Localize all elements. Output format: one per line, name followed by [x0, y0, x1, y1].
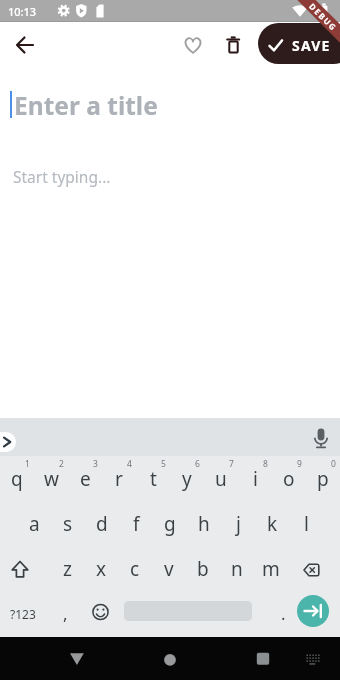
staticText: n: [231, 556, 243, 582]
button[interactable]: [0, 546, 49, 591]
staticText: Start typing...: [13, 166, 111, 187]
button[interactable]: l: [289, 501, 323, 546]
staticText: g: [164, 511, 176, 537]
button[interactable]: [0, 432, 16, 452]
button[interactable]: u: [204, 456, 238, 501]
staticText: 10:13: [8, 4, 37, 19]
button[interactable]: .: [266, 591, 300, 636]
staticText: s: [63, 511, 73, 537]
button[interactable]: r: [102, 456, 136, 501]
staticText: j: [236, 511, 241, 537]
staticText: t: [150, 466, 157, 492]
button[interactable]: f: [119, 501, 153, 546]
staticText: u: [215, 466, 227, 492]
button[interactable]: s: [51, 501, 85, 546]
button[interactable]: h: [187, 501, 221, 546]
button[interactable]: t: [136, 456, 170, 501]
button[interactable]: [8, 28, 42, 62]
staticText: r: [115, 466, 123, 492]
staticText: Enter a title: [14, 89, 158, 122]
staticText: ,: [63, 602, 68, 625]
button[interactable]: c: [118, 546, 152, 591]
staticText: 4: [127, 458, 132, 470]
button[interactable]: [84, 591, 118, 636]
button[interactable]: b: [186, 546, 220, 591]
staticText: p: [317, 466, 329, 492]
staticText: 8: [263, 458, 268, 470]
staticText: d: [96, 511, 108, 537]
button[interactable]: [298, 643, 328, 673]
button[interactable]: ?123: [0, 591, 45, 636]
staticText: 9: [297, 458, 302, 470]
staticText: .: [281, 602, 286, 625]
button[interactable]: g: [153, 501, 187, 546]
staticText: e: [80, 466, 91, 492]
staticText: b: [197, 556, 209, 582]
staticText: y: [182, 466, 192, 492]
button[interactable]: a: [17, 501, 51, 546]
button[interactable]: x: [84, 546, 118, 591]
button[interactable]: [216, 28, 250, 62]
staticText: 0: [331, 458, 336, 470]
button[interactable]: z: [50, 546, 84, 591]
staticText: o: [283, 466, 295, 492]
button[interactable]: v: [152, 546, 186, 591]
button[interactable]: p: [306, 456, 340, 501]
staticText: ?123: [10, 606, 36, 622]
staticText: v: [164, 556, 174, 582]
button[interactable]: e: [68, 456, 102, 501]
staticText: 1: [25, 458, 30, 470]
button[interactable]: n: [220, 546, 254, 591]
staticText: i: [253, 466, 258, 492]
button[interactable]: i: [238, 456, 272, 501]
staticText: SAVE: [292, 36, 331, 55]
staticText: f: [133, 511, 140, 537]
button[interactable]: m: [254, 546, 288, 591]
staticText: 5: [161, 458, 166, 470]
button[interactable]: w: [34, 456, 68, 501]
button[interactable]: [246, 643, 276, 673]
staticText: 2: [59, 458, 64, 470]
button[interactable]: [62, 643, 92, 673]
staticText: l: [304, 511, 309, 537]
staticText: 7: [229, 458, 234, 470]
button[interactable]: [288, 546, 340, 591]
button[interactable]: ,: [46, 591, 84, 636]
button[interactable]: [155, 643, 185, 673]
staticText: c: [130, 556, 140, 582]
staticText: 6: [195, 458, 200, 470]
staticText: a: [29, 511, 40, 537]
button[interactable]: q: [0, 456, 34, 501]
button[interactable]: j: [221, 501, 255, 546]
button[interactable]: d: [85, 501, 119, 546]
staticText: w: [44, 466, 59, 492]
button[interactable]: [306, 424, 334, 450]
staticText: k: [267, 511, 278, 537]
button[interactable]: [258, 23, 340, 64]
button[interactable]: o: [272, 456, 306, 501]
staticText: 3: [93, 458, 98, 470]
staticText: q: [11, 466, 23, 492]
staticText: z: [63, 556, 72, 582]
button[interactable]: y: [170, 456, 204, 501]
staticText: DEBUG: [307, 1, 340, 33]
staticText: m: [262, 556, 280, 582]
button[interactable]: [176, 28, 210, 62]
staticText: x: [96, 556, 107, 582]
staticText: h: [198, 511, 210, 537]
button[interactable]: k: [255, 501, 289, 546]
button[interactable]: [297, 595, 329, 627]
